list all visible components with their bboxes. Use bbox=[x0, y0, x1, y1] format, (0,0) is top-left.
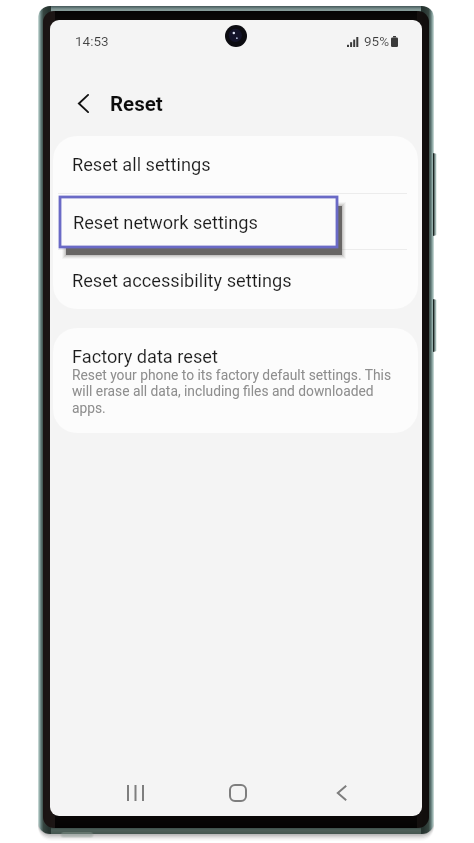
staticText: Reset bbox=[110, 92, 163, 116]
button[interactable]: Back bbox=[317, 768, 367, 816]
button[interactable]: Recents bbox=[110, 768, 160, 816]
button[interactable]: Navigate up bbox=[64, 84, 102, 122]
staticText: 95% bbox=[364, 33, 390, 49]
staticText: Reset all settings bbox=[72, 154, 211, 175]
button[interactable]: Reset all settings bbox=[53, 136, 418, 193]
button[interactable]: Reset network settings bbox=[60, 197, 337, 247]
staticText: Reset network settings bbox=[73, 212, 258, 233]
staticText: Reset your phone to its factory default … bbox=[72, 367, 397, 417]
staticText: 14:53 bbox=[75, 33, 109, 49]
button[interactable]: Factory data reset bbox=[53, 328, 418, 433]
button[interactable]: Home bbox=[213, 768, 263, 816]
staticText: Factory data reset bbox=[72, 346, 218, 367]
staticText: Reset accessibility settings bbox=[72, 270, 292, 291]
button[interactable]: Reset accessibility settings bbox=[53, 252, 418, 309]
